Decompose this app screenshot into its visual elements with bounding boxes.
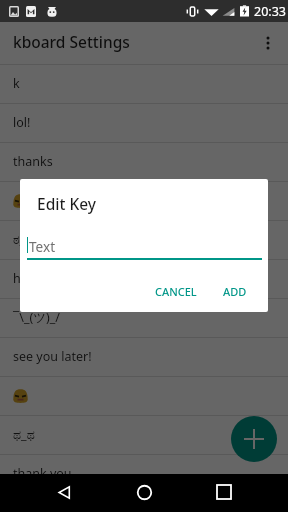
staticText: thank you — [13, 465, 72, 482]
button[interactable]: ¯\_(ツ)_/¯ — [0, 299, 288, 337]
button[interactable]: Home — [126, 474, 162, 510]
staticText: hmm — [13, 270, 45, 287]
button[interactable]: Recents — [206, 474, 242, 510]
button[interactable]: lol! — [0, 104, 288, 142]
staticText: see you later! — [13, 348, 92, 365]
button[interactable]: ಠ_ಠ — [0, 221, 288, 259]
button[interactable] — [0, 377, 288, 415]
staticText: 20:33 — [254, 3, 286, 20]
staticText: Text — [29, 237, 56, 256]
staticText: ¯\_(ツ)_/¯ — [13, 309, 67, 326]
button[interactable]: More options — [248, 23, 288, 63]
staticText: lol! — [13, 114, 31, 131]
button[interactable]: thanks — [0, 143, 288, 181]
button[interactable]: CANCEL — [147, 278, 205, 305]
staticText: k — [13, 75, 20, 92]
button[interactable]: thank you — [0, 455, 288, 493]
button[interactable] — [0, 182, 288, 220]
button[interactable]: ಥ_ಥ — [0, 416, 288, 454]
staticText: thanks — [13, 153, 53, 170]
staticText: kboard Settings — [13, 31, 130, 52]
staticText: Edit Key — [37, 193, 96, 214]
button[interactable]: hmm — [0, 260, 288, 298]
button[interactable]: Back — [46, 474, 82, 510]
staticText: ಠ_ಠ — [13, 231, 32, 248]
button[interactable]: Add — [231, 416, 277, 462]
staticText: ಥ_ಥ — [13, 426, 35, 443]
button[interactable]: see you later! — [0, 338, 288, 376]
button[interactable]: ADD — [215, 278, 255, 305]
button[interactable]: k — [0, 65, 288, 103]
